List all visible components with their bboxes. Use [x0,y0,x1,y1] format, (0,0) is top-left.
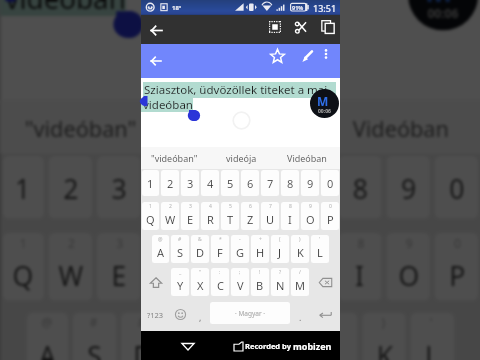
button[interactable]: A [27,313,68,360]
button[interactable]: Videóban [321,100,480,153]
button[interactable]: C [211,268,229,296]
staticText: + [259,236,262,243]
button[interactable]: R [145,233,189,301]
button[interactable]: G [218,313,261,360]
button[interactable]: V [231,268,249,296]
button[interactable]: 0 [435,156,478,219]
staticText: - [237,315,242,332]
button[interactable]: M [291,268,309,296]
staticText: & [198,236,202,243]
button[interactable]: Favourite [265,44,289,68]
button[interactable]: Backspace [310,267,340,300]
button[interactable]: 5 [193,156,237,219]
button[interactable]: Z [242,233,285,301]
button[interactable]: 6 [241,170,259,196]
staticText: Q [146,212,155,227]
button[interactable]: R [201,202,219,230]
button[interactable]: G [231,235,249,263]
staticText: P [327,212,334,227]
button[interactable]: 9 [386,156,430,219]
button[interactable]: Emoji [170,300,190,331]
button[interactable]: O [386,233,430,301]
button[interactable]: Mobizen recorder [310,89,339,118]
button[interactable]: Y [171,268,189,296]
button[interactable]: X [191,268,209,296]
button[interactable]: K [362,313,406,360]
button[interactable]: A [152,235,169,263]
button[interactable]: 9 [301,170,319,196]
button[interactable]: I [338,233,382,301]
button[interactable]: H [251,235,269,263]
button[interactable]: L [410,313,454,360]
button[interactable]: More options [316,44,336,64]
button[interactable]: 1 [142,170,159,196]
button[interactable]: P [321,202,339,230]
button[interactable]: T [221,202,239,230]
button[interactable]: D [121,313,164,360]
button[interactable]: Back [145,19,167,41]
button[interactable]: O [301,202,319,230]
button[interactable]: Copy [316,15,340,39]
staticText: 4 [164,235,172,252]
button[interactable]: videója [208,147,274,169]
button[interactable]: N [271,268,289,296]
button[interactable]: 2 [49,156,92,219]
button[interactable]: Z [241,202,259,230]
button[interactable]: Shift [141,267,170,300]
button[interactable]: S [73,313,116,360]
button[interactable]: 2 [161,170,179,196]
button[interactable]: S [171,235,189,263]
button[interactable]: Videóban [274,147,340,169]
button[interactable]: K [291,235,309,263]
button[interactable]: E [97,233,140,301]
button[interactable]: W [161,202,179,230]
staticText: R [207,212,214,227]
button[interactable]: Mobizen recorder [408,0,478,30]
button[interactable]: P [435,233,478,301]
button[interactable]: 7 [290,156,333,219]
button[interactable]: H [266,313,309,360]
button[interactable]: 0 [321,170,339,196]
staticText: Videóban [287,152,327,164]
button[interactable]: F [169,313,213,360]
button[interactable]: "videóban" [0,100,162,153]
button[interactable]: D [191,235,209,263]
button[interactable]: T [193,233,237,301]
button[interactable]: 3 [181,170,199,196]
button[interactable]: L [311,235,329,263]
button[interactable]: Back [179,337,197,355]
button[interactable]: Enter [310,300,340,331]
button[interactable]: 4 [145,156,189,219]
button[interactable]: ?123 [141,300,170,331]
button[interactable]: E [181,202,199,230]
button[interactable]: Q [142,202,159,230]
button[interactable]: Navigate up [145,50,167,72]
button[interactable]: U [261,202,279,230]
button[interactable]: U [290,233,333,301]
button[interactable]: B [251,268,269,296]
button[interactable]: I [281,202,299,230]
button[interactable]: 8 [281,170,299,196]
button[interactable]: 6 [242,156,285,219]
button[interactable]: Cut [289,15,313,39]
button[interactable]: Format [294,44,318,68]
button[interactable]: J [314,313,357,360]
button[interactable]: 7 [261,170,279,196]
button[interactable]: 5 [221,170,239,196]
staticText: 2 [63,170,80,207]
button[interactable]: "videóban" [141,147,208,169]
button[interactable]: 1 [3,156,44,219]
button[interactable]: , [190,300,210,331]
button[interactable]: Select all [263,15,287,39]
button[interactable]: 8 [338,156,382,219]
button[interactable]: W [49,233,92,301]
button[interactable]: videója [162,100,321,153]
button[interactable]: J [271,235,289,263]
button[interactable]: F [211,235,229,263]
button[interactable]: Q [3,233,44,301]
button[interactable]: 3 [97,156,140,219]
button[interactable]: · Magyar · [210,302,290,324]
button[interactable]: 4 [201,170,219,196]
